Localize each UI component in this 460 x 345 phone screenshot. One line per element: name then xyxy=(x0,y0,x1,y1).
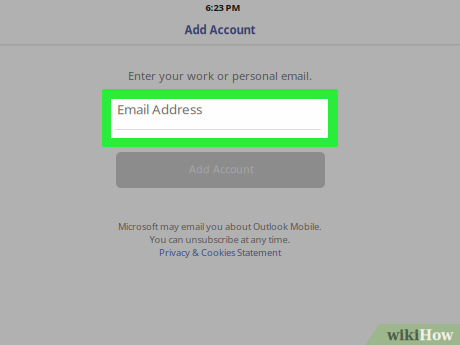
staticText: 6:23 PM xyxy=(205,1,240,14)
staticText: How xyxy=(419,327,453,343)
staticText: wiki xyxy=(387,327,419,343)
staticText: Enter your work or personal email. xyxy=(128,68,312,83)
staticText: You can unsubscribe at any time. xyxy=(149,233,290,246)
button[interactable]: Privacy & Cookies Statement xyxy=(0,246,440,259)
staticText: Microsoft may email you about Outlook Mo… xyxy=(118,220,322,233)
staticText: Add Account xyxy=(189,162,254,176)
staticText: Add Account xyxy=(184,22,255,38)
staticText: Email Address xyxy=(117,100,202,118)
staticText: Privacy & Cookies Statement xyxy=(159,246,281,259)
button[interactable]: Add Account xyxy=(116,152,325,188)
